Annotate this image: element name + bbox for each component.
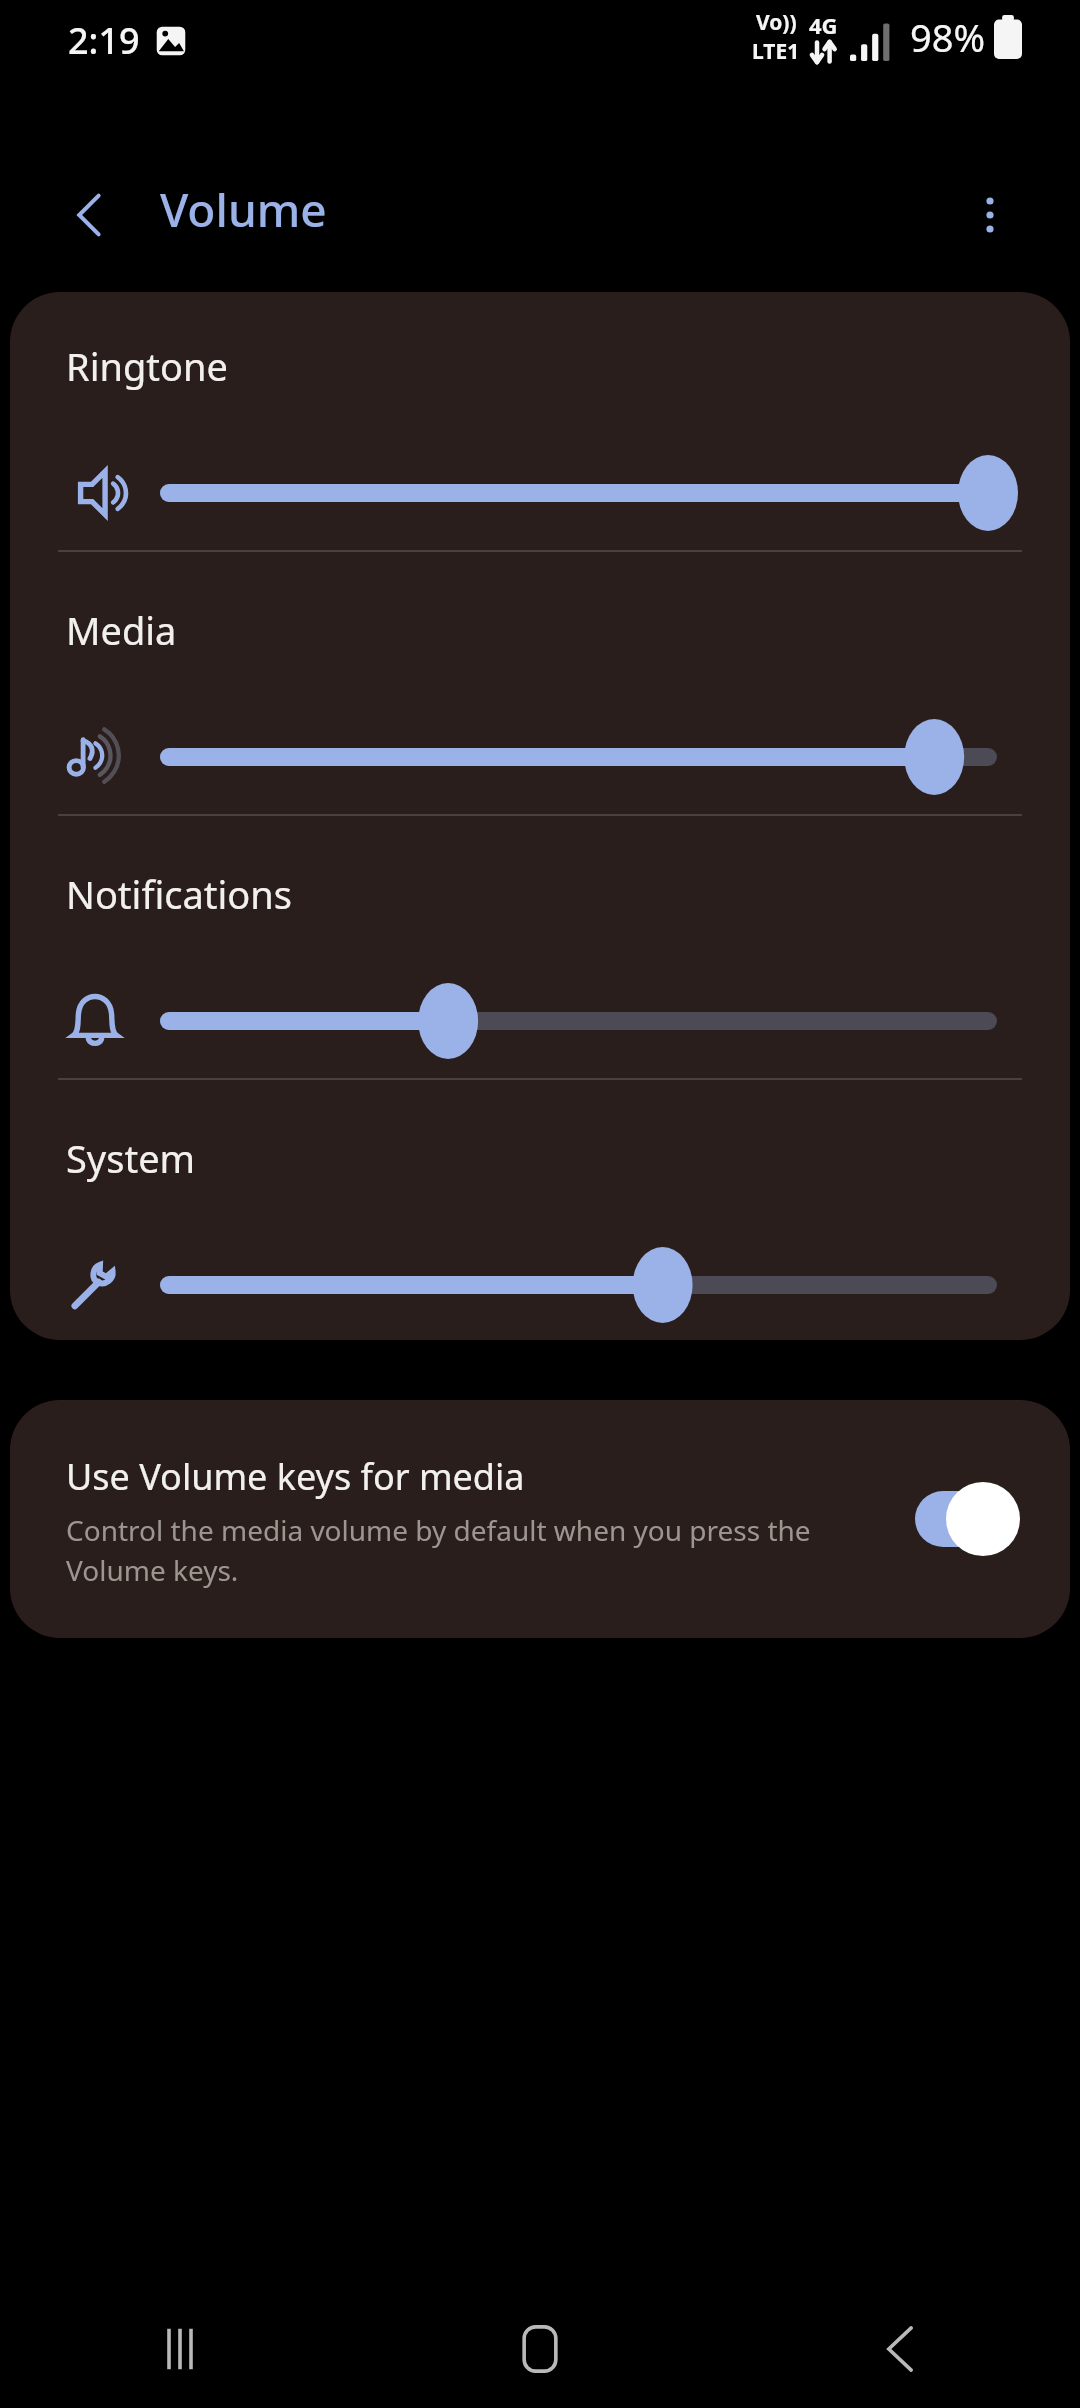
- button[interactable]: More options: [940, 165, 1040, 265]
- staticText: Ringtone: [66, 340, 228, 392]
- staticText: Vo)): [756, 8, 797, 37]
- button[interactable]: Use Volume keys for media: [10, 1400, 1070, 1638]
- staticText: LTE1: [752, 37, 800, 66]
- staticText: 4G: [809, 10, 838, 40]
- button[interactable]: [30, 702, 1050, 812]
- button[interactable]: Recent apps: [0, 2290, 360, 2408]
- staticText: System: [66, 1132, 196, 1184]
- button[interactable]: [30, 966, 1050, 1076]
- button[interactable]: Navigate up: [40, 165, 140, 265]
- staticText: Use Volume keys for media: [66, 1452, 525, 1501]
- button[interactable]: Home: [360, 2290, 720, 2408]
- button[interactable]: [30, 1230, 1050, 1340]
- staticText: Volume: [160, 178, 327, 241]
- button[interactable]: [30, 438, 1050, 548]
- staticText: Media: [66, 604, 177, 656]
- button[interactable]: Back: [720, 2290, 1080, 2408]
- staticText: 2:19: [68, 16, 140, 65]
- staticText: 98%: [910, 11, 986, 63]
- staticText: Control the media volume by default when…: [66, 1511, 856, 1590]
- staticText: Notifications: [66, 868, 293, 920]
- button[interactable]: Use Volume keys for media toggle: [905, 1474, 1025, 1564]
